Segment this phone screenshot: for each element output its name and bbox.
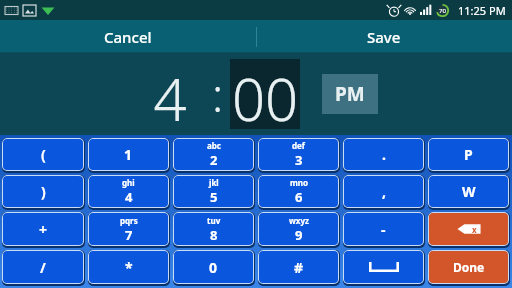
staticText: 4 — [153, 59, 187, 129]
button[interactable]: def — [259, 139, 338, 170]
staticText: ghi — [122, 177, 135, 188]
staticText: mno — [290, 177, 308, 188]
button[interactable]: jkl — [174, 176, 253, 207]
button[interactable]: pqrs — [89, 213, 168, 245]
button[interactable]: 0 — [174, 251, 253, 283]
staticText: x — [472, 224, 477, 235]
staticText: 5 — [210, 188, 218, 206]
staticText: ) — [41, 182, 46, 201]
button[interactable]: 4 — [134, 59, 206, 129]
button[interactable]: P — [429, 139, 508, 170]
staticText: 11:25 PM — [458, 3, 506, 18]
button[interactable]: ghi — [89, 176, 168, 207]
staticText: jkl — [209, 177, 219, 188]
staticText: ( — [41, 145, 46, 164]
staticText: 1 — [124, 145, 133, 164]
staticText: wxyz — [289, 215, 309, 226]
staticText: / — [40, 258, 46, 277]
button[interactable]: wxyz — [259, 213, 338, 245]
staticText: W — [462, 182, 476, 201]
button[interactable]: 1 — [89, 139, 168, 170]
button[interactable]: Space — [344, 251, 423, 283]
staticText: 4 — [125, 188, 133, 206]
staticText: 9 — [295, 226, 303, 244]
button[interactable]: Save — [256, 20, 512, 53]
button[interactable]: , — [344, 176, 423, 207]
button[interactable]: . — [344, 139, 423, 170]
button[interactable]: PM — [322, 74, 378, 114]
staticText: def — [292, 140, 305, 151]
staticText: Done — [453, 259, 485, 275]
button[interactable]: + — [3, 213, 83, 245]
staticText: 70 — [439, 7, 446, 15]
staticText: 00 — [232, 59, 299, 129]
staticText: tuv — [207, 215, 221, 226]
staticText: P — [464, 145, 473, 164]
staticText: pqrs — [120, 215, 138, 226]
button[interactable]: / — [3, 251, 83, 283]
staticText: 0 — [209, 258, 218, 277]
button[interactable]: Cancel — [0, 20, 256, 53]
button[interactable]: - — [344, 213, 423, 245]
button[interactable]: 00 — [230, 59, 300, 129]
button[interactable]: Delete — [429, 213, 508, 245]
button[interactable]: tuv — [174, 213, 253, 245]
button[interactable]: Done — [429, 251, 508, 283]
button[interactable]: * — [89, 251, 168, 283]
button[interactable]: # — [259, 251, 338, 283]
staticText: 3 — [295, 151, 303, 169]
button[interactable]: ) — [3, 176, 83, 207]
staticText: abc — [207, 140, 221, 151]
staticText: 7 — [125, 226, 133, 244]
staticText: 8 — [210, 226, 218, 244]
staticText: PM — [335, 81, 365, 107]
staticText: # — [294, 258, 304, 277]
staticText: + — [39, 220, 48, 239]
staticText: - — [381, 220, 386, 239]
button[interactable]: ( — [3, 139, 83, 170]
staticText: Cancel — [104, 27, 152, 47]
staticText: 6 — [295, 188, 303, 206]
staticText: : — [212, 63, 224, 126]
staticText: Save — [367, 27, 401, 47]
button[interactable]: mno — [259, 176, 338, 207]
staticText: , — [382, 182, 386, 201]
button[interactable]: abc — [174, 139, 253, 170]
staticText: * — [125, 258, 133, 277]
staticText: 2 — [210, 151, 218, 169]
staticText: . — [382, 145, 386, 164]
button[interactable]: W — [429, 176, 508, 207]
